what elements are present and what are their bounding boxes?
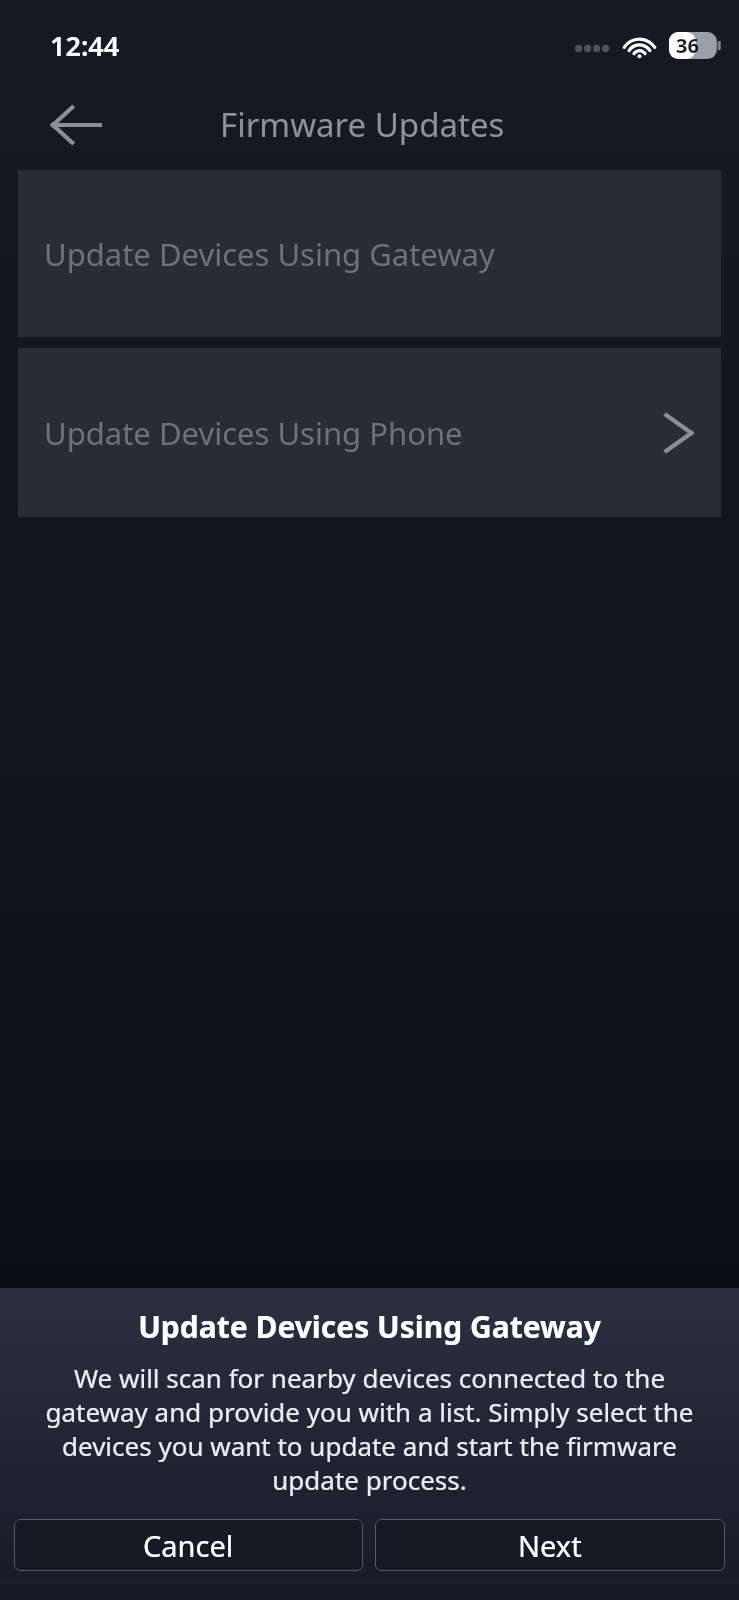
- staticText: Firmware Updates: [220, 102, 505, 147]
- button[interactable]: Cancel: [14, 1519, 363, 1571]
- staticText: Cancel: [143, 1526, 234, 1565]
- button[interactable]: Back: [40, 89, 112, 161]
- staticText: Update Devices Using Phone: [44, 412, 463, 454]
- staticText: 12:44: [50, 27, 120, 64]
- staticText: Update Devices Using Gateway: [0, 1306, 739, 1347]
- button[interactable]: Next: [375, 1519, 725, 1571]
- staticText: We will scan for nearby devices connecte…: [22, 1360, 717, 1497]
- button[interactable]: Update Devices Using Gateway: [18, 170, 721, 337]
- staticText: 36: [676, 32, 699, 59]
- button[interactable]: Update Devices Using Phone: [18, 348, 721, 517]
- staticText: Next: [518, 1526, 582, 1565]
- staticText: Update Devices Using Gateway: [44, 233, 495, 275]
